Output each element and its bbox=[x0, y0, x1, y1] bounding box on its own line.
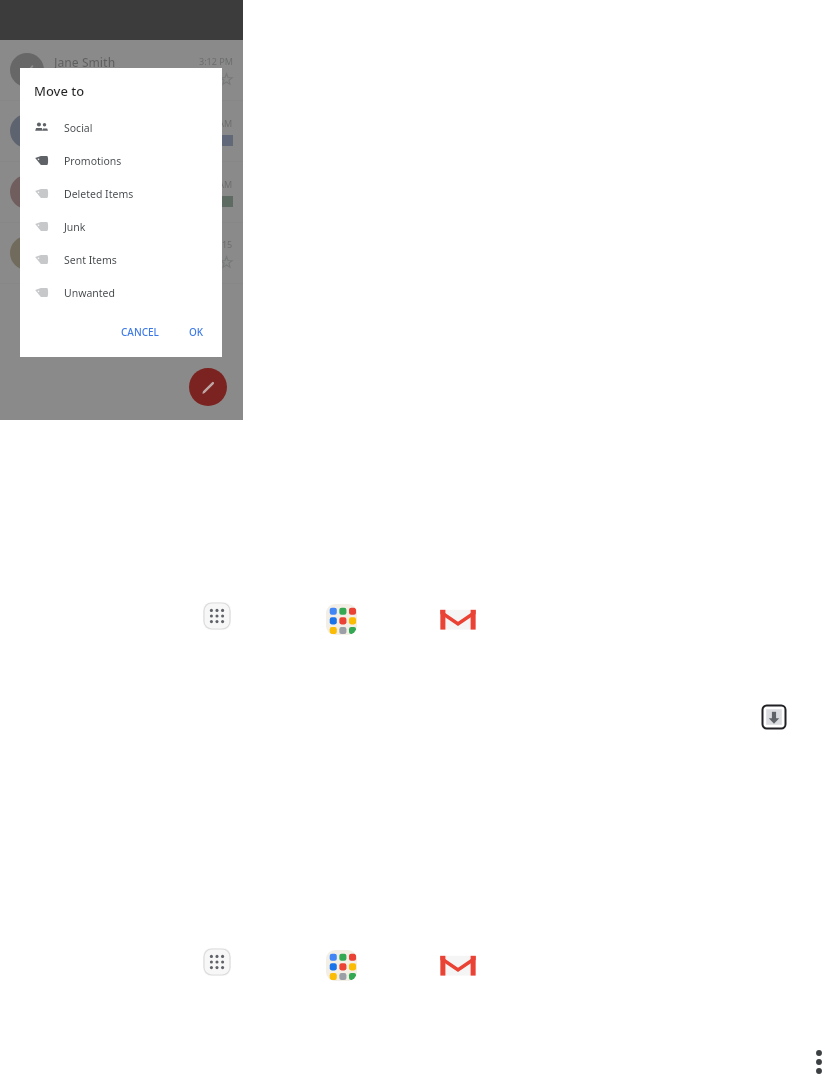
staticText: Promotions bbox=[64, 154, 122, 168]
staticText: 11:40 AM bbox=[193, 117, 233, 129]
button[interactable]: Junk bbox=[20, 210, 222, 243]
staticText: 3:12 PM bbox=[199, 55, 233, 67]
staticText: Sep 15 bbox=[204, 238, 233, 250]
button[interactable]: Gmail bbox=[437, 951, 479, 981]
button[interactable]: Social bbox=[20, 111, 222, 144]
button[interactable]: Promotions bbox=[20, 144, 222, 177]
button[interactable]: CANCEL bbox=[113, 319, 167, 345]
button[interactable]: More options bbox=[812, 1047, 825, 1077]
staticText: OK bbox=[189, 325, 204, 339]
staticText: 10:05 AM bbox=[193, 178, 233, 190]
button[interactable]: All apps bbox=[203, 948, 231, 976]
button[interactable]: Google folder bbox=[326, 950, 357, 981]
button[interactable]: Deleted Items bbox=[20, 177, 222, 210]
button[interactable]: Compose bbox=[189, 368, 227, 406]
button[interactable]: Google folder bbox=[326, 604, 357, 635]
staticText: Junk bbox=[64, 220, 86, 234]
staticText: Lisa Ray bbox=[54, 176, 100, 192]
staticText: Jane Smith bbox=[54, 54, 116, 70]
staticText: Re: Tickets bbox=[54, 256, 104, 270]
staticText: Deleted Items bbox=[64, 187, 134, 201]
button[interactable]: Gmail bbox=[437, 605, 479, 635]
staticText: Invoice bbox=[54, 195, 88, 209]
button[interactable]: Unwanted bbox=[20, 276, 222, 309]
staticText: Move to bbox=[34, 82, 85, 100]
staticText: Unwanted bbox=[64, 286, 115, 300]
button[interactable]: All apps bbox=[203, 602, 231, 630]
staticText: Sent Items bbox=[64, 253, 117, 267]
staticText: Mark Allen bbox=[54, 115, 115, 131]
button[interactable]: Download bbox=[761, 704, 787, 730]
staticText: CANCEL bbox=[121, 325, 159, 339]
button[interactable]: Sent Items bbox=[20, 243, 222, 276]
staticText: Social bbox=[64, 121, 93, 135]
button[interactable]: OK bbox=[181, 319, 212, 345]
